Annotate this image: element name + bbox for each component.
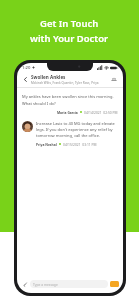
staticText: 1:20 (22, 65, 31, 71)
staticText: Increase Lasix to 40 MG today and elevat… (36, 121, 118, 126)
staticText: tomorrow morning, call the office. (36, 133, 101, 138)
staticText: Swollen Ankles (31, 74, 66, 80)
staticText: with Your Doctor (30, 32, 109, 45)
button[interactable]: Attach (21, 280, 29, 288)
staticText: Mckinsh Wilts, Frank Quentin, Tyler Ross… (31, 81, 109, 85)
staticText: Maria Garcia (57, 110, 78, 114)
button[interactable]: Back (21, 75, 30, 84)
staticText: Type a message (33, 282, 58, 286)
staticText: Get In Touch (40, 17, 99, 30)
staticText: legs. If you don't experience any relief… (36, 127, 113, 132)
staticText: 04/14/2021 02:50 PM (84, 110, 118, 114)
button[interactable]: Send (110, 281, 119, 287)
button[interactable]: Type a message (30, 280, 108, 288)
staticText: 04/15/2021 03:11 PM (63, 142, 97, 146)
staticText: What should I do? (22, 101, 56, 106)
button[interactable]: Participants (109, 75, 119, 85)
staticText: My ankles have been swollen since this m… (22, 94, 114, 99)
staticText: Priya Neshal (36, 142, 57, 146)
